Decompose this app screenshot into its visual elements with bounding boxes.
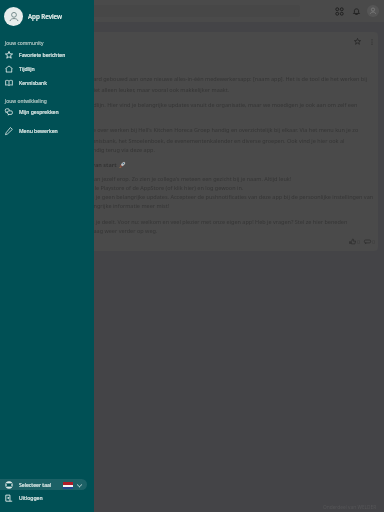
button[interactable]: Profile [367,5,379,17]
button[interactable]: Like [349,238,361,245]
staticText: in de reacties. We helpen je graag weer … [16,227,158,234]
button[interactable]: Tijdlijn [0,62,94,76]
staticText: de afgelopen maanden is er hard gebouwd … [16,75,368,82]
staticText: onze ontwikkelgesprekken handig terug vi… [16,146,155,153]
staticText: je telefoon, zodat je geen belangrijke i… [16,202,170,209]
button[interactable]: Favoriete berichten [0,48,94,62]
staticText: Mijn gesprekken [19,109,59,116]
button[interactable]: App Review [4,3,94,29]
staticText: direct terechtkomen bij de Kennisbank, h… [16,137,345,144]
staticText: • Download de app in de Google Playstore… [16,184,244,191]
staticText: Menu bewerken [19,128,58,135]
staticText: Tijdlijn [19,66,35,73]
button[interactable]: Menu bewerken [0,124,94,138]
button[interactable]: Apps [333,5,346,18]
staticText: App Review [28,12,63,20]
button[interactable]: Favorite [352,36,363,47]
button[interactable]: Zoeken... [6,5,300,17]
staticText: Onderdeel van WELDER [323,504,377,511]
staticText: Jouw ontwikkeling [5,98,47,105]
staticText: Daarnaast staat alle informatie over wer… [16,126,359,133]
staticText: • Zet je notificaties aan. Zo mis je gee… [16,193,374,200]
staticText: Zoeken... [9,8,31,15]
button[interactable]: Selecteer taal [0,479,87,490]
staticText: Selecteer taal [19,482,52,489]
staticText: Favoriete berichten [19,52,66,59]
staticText: Jouw community [5,40,44,47]
staticText: bericht. [16,111,36,118]
staticText: ons bij Hell's Kitchen Horeca niet allee… [16,86,230,93]
staticText: • Zet meteen een mooie foto van jezelf e… [16,175,292,182]
button[interactable]: Comment [364,238,376,245]
button[interactable]: Mijn gesprekken [0,105,94,119]
staticText: Kennisbank [19,80,47,87]
button[interactable]: Uitloggen [0,491,94,505]
button[interactable]: Kennisbank [0,76,94,90]
staticText: We hopen dat je onze tips met je deelt. … [16,218,348,225]
staticText: Zo ga je vanaf nu snel goed van start [16,161,117,168]
staticText: Uitloggen [19,495,43,502]
button[interactable]: Notifications [350,5,363,18]
staticText: De app is jouw persoonlijke tijdlijn. Hi… [16,101,358,108]
